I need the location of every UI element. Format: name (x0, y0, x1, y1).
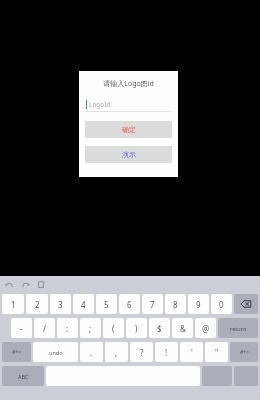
button[interactable]: 2 (26, 294, 48, 314)
staticText: 5 (104, 299, 109, 310)
staticText: ' (191, 347, 193, 358)
staticText: 7 (150, 299, 155, 310)
staticText: 3 (58, 299, 63, 310)
button[interactable]: - (11, 318, 32, 338)
staticText: undo (49, 349, 63, 356)
staticText: ? (140, 347, 144, 358)
staticText: 6 (127, 299, 132, 310)
staticText: 1 (11, 299, 16, 310)
staticText: ! (165, 347, 168, 358)
button[interactable]: 7 (142, 294, 163, 314)
button[interactable]: 9 (188, 294, 209, 314)
button[interactable]: 3 (50, 294, 71, 314)
button[interactable]: 0 (211, 294, 232, 314)
button[interactable]: . (80, 342, 103, 362)
staticText: ABC (18, 373, 29, 380)
button[interactable]: & (172, 318, 193, 338)
staticText: 8 (173, 299, 178, 310)
button[interactable]: , (105, 342, 128, 362)
staticText: : (66, 323, 69, 334)
staticText: ) (135, 323, 138, 334)
button[interactable]: : (57, 318, 78, 338)
staticText: @ (202, 323, 210, 334)
staticText: 0 (219, 299, 224, 310)
button[interactable]: ? (130, 342, 153, 362)
button[interactable]: 确定 (85, 121, 172, 138)
button[interactable]: " (205, 342, 228, 362)
button[interactable]: / (34, 318, 55, 338)
button[interactable]: Undo (5, 280, 14, 289)
button[interactable]: undo (33, 342, 78, 362)
staticText: . (90, 347, 93, 358)
button[interactable]: return (218, 318, 258, 338)
button[interactable]: ! (155, 342, 178, 362)
button[interactable]: Paste (37, 280, 46, 289)
staticText: 9 (196, 299, 201, 310)
button[interactable]: #+= (230, 342, 258, 362)
staticText: #+= (240, 349, 249, 356)
staticText: " (215, 347, 219, 358)
staticText: , (115, 347, 118, 358)
button[interactable]: 5 (96, 294, 117, 314)
staticText: $ (157, 323, 162, 334)
button[interactable]: @ (195, 318, 216, 338)
staticText: 确定 (122, 125, 136, 134)
staticText: return (230, 325, 247, 332)
button[interactable]: ' (180, 342, 203, 362)
staticText: 2 (35, 299, 40, 310)
button[interactable]: ; (80, 318, 101, 338)
button[interactable]: 6 (119, 294, 140, 314)
button[interactable]: 8 (165, 294, 186, 314)
button[interactable]: ( (103, 318, 124, 338)
staticText: - (20, 323, 23, 334)
staticText: 演示 (122, 150, 136, 159)
staticText: / (43, 323, 46, 334)
button[interactable]: ) (126, 318, 147, 338)
button[interactable]: 1 (2, 294, 24, 314)
staticText: ( (112, 323, 115, 334)
staticText: #+= (12, 349, 21, 356)
staticText: & (180, 323, 186, 334)
staticText: LogoId (89, 100, 111, 109)
button[interactable]: Redo (21, 280, 30, 289)
button[interactable]: 演示 (85, 146, 172, 163)
staticText: 请输入Logo图id (79, 79, 178, 89)
button[interactable]: #+= (2, 342, 31, 362)
button[interactable]: Backspace (234, 294, 258, 314)
staticText: ; (89, 323, 92, 334)
button[interactable]: ABC (2, 366, 44, 386)
button[interactable]: LogoId (86, 98, 171, 111)
button[interactable]: $ (149, 318, 170, 338)
button[interactable]: 4 (73, 294, 94, 314)
staticText: 4 (81, 299, 86, 310)
